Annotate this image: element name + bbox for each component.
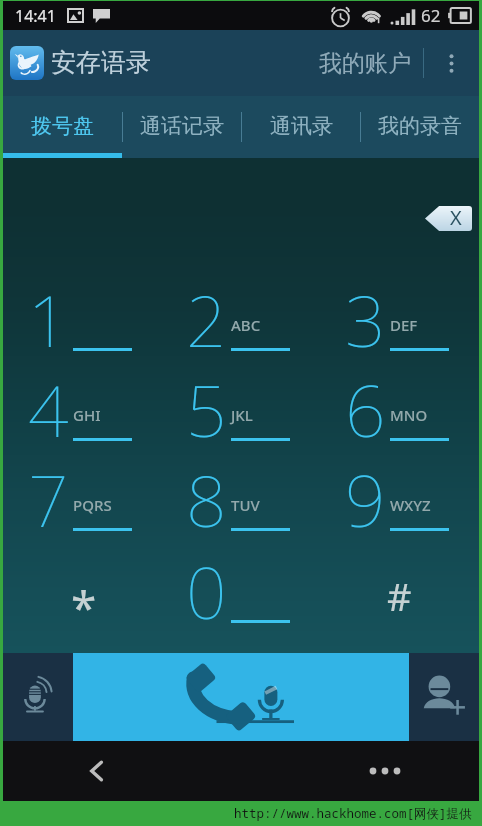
staticText: # [387, 570, 412, 622]
staticText: 拨号盘 [31, 113, 94, 139]
button[interactable]: 6 [320, 391, 479, 481]
button[interactable]: 4 [3, 391, 161, 481]
staticText: 62 [421, 4, 441, 27]
staticText: 通讯录 [270, 113, 333, 139]
staticText: 7 [28, 451, 69, 541]
button[interactable]: 5 [161, 391, 320, 481]
button[interactable]: 我的账户 [313, 39, 417, 88]
staticText: 0 [186, 543, 227, 633]
staticText: 我的账户 [319, 49, 411, 78]
staticText: 9 [345, 451, 386, 541]
staticText: ABC [231, 315, 261, 335]
staticText: 1 [28, 271, 69, 361]
staticText: GHI [73, 405, 101, 425]
staticText: 6 [345, 361, 386, 451]
staticText: TUV [231, 495, 260, 515]
staticText: * [71, 576, 97, 639]
staticText: 安存语录 [51, 47, 151, 78]
staticText: 5 [186, 361, 227, 451]
button[interactable]: 通讯录 [242, 96, 360, 158]
button[interactable]: # [320, 573, 479, 663]
staticText: http://www.hackhome.com[网侠]提供 [234, 805, 472, 822]
staticText: MNO [390, 405, 428, 425]
button[interactable]: 9 [320, 481, 479, 571]
button[interactable]: 7 [3, 481, 161, 571]
button[interactable]: 8 [161, 481, 320, 571]
button[interactable]: More options [424, 30, 479, 96]
staticText: X [450, 204, 462, 231]
staticText: 通话记录 [140, 113, 224, 139]
button[interactable]: 1 [3, 301, 161, 391]
button[interactable]: 通话记录 [123, 96, 241, 158]
staticText: DEF [390, 315, 418, 335]
button[interactable]: Add contact [409, 653, 479, 741]
button[interactable]: 我的录音 [361, 96, 479, 158]
button[interactable]: Voice dial [3, 653, 73, 741]
button[interactable]: 3 [320, 301, 479, 391]
staticText: 8 [186, 451, 227, 541]
button[interactable]: 2 [161, 301, 320, 391]
staticText: 2 [186, 271, 227, 361]
button[interactable]: Back [75, 749, 119, 793]
staticText: 14:41 [15, 5, 56, 27]
staticText: JKL [231, 405, 253, 425]
button[interactable]: 0 [161, 573, 320, 663]
staticText: PQRS [73, 495, 112, 515]
button[interactable]: Call [73, 653, 409, 741]
button[interactable]: * [3, 573, 161, 663]
button[interactable]: Menu [363, 749, 407, 793]
staticText: WXYZ [390, 495, 431, 515]
staticText: 我的录音 [378, 113, 462, 139]
staticText: 4 [28, 361, 69, 451]
button[interactable]: 拨号盘 [3, 96, 122, 158]
button[interactable]: Delete [425, 205, 472, 232]
staticText: 3 [345, 271, 386, 361]
